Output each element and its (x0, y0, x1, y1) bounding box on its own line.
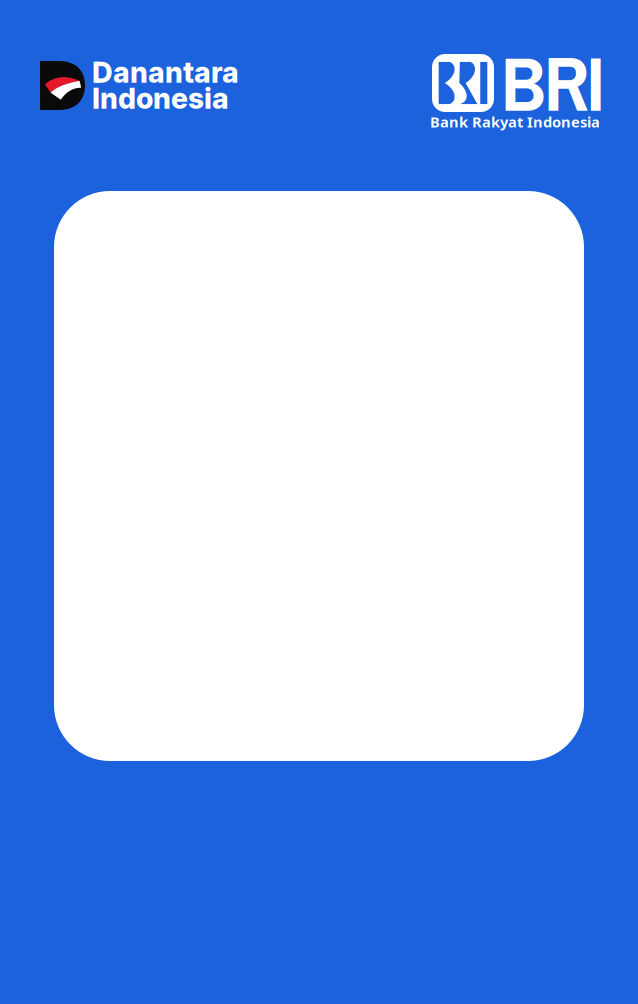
staticText: Danantara (92, 55, 239, 90)
button[interactable]: Danantara Indonesia (40, 53, 236, 118)
staticText: BRI (501, 32, 604, 134)
staticText: Bank Rakyat Indonesia (430, 112, 600, 131)
staticText: Indonesia (92, 81, 229, 116)
button[interactable]: BRI Bank Rakyat Indonesia (430, 34, 610, 132)
